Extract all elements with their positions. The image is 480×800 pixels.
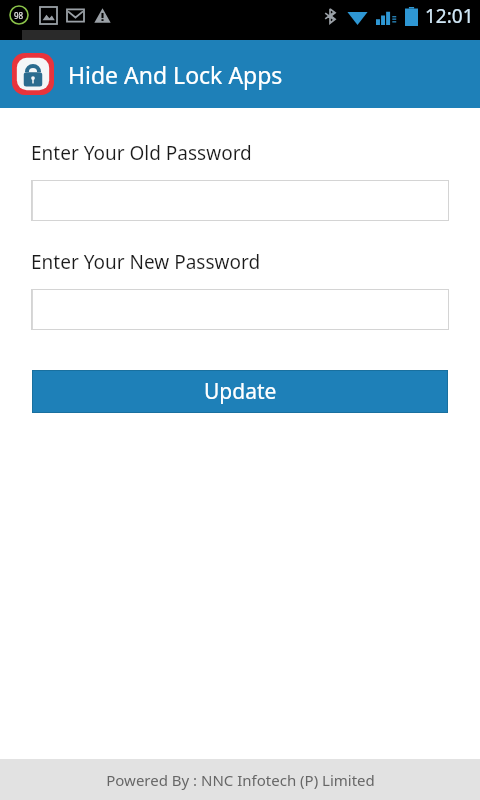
button[interactable]: Update — [32, 370, 448, 413]
staticText: Update — [204, 377, 277, 406]
staticText: Hide And Lock Apps — [68, 59, 283, 90]
staticText: 98 — [14, 10, 24, 21]
button[interactable] — [31, 289, 449, 330]
staticText: Enter Your Old Password — [31, 140, 252, 166]
staticText: 12:01 — [425, 3, 474, 29]
other: App icon — [12, 53, 54, 95]
staticText: Enter Your New Password — [31, 249, 261, 275]
staticText: Powered By : NNC Infotech (P) Limited — [106, 770, 375, 790]
button[interactable] — [31, 180, 449, 221]
